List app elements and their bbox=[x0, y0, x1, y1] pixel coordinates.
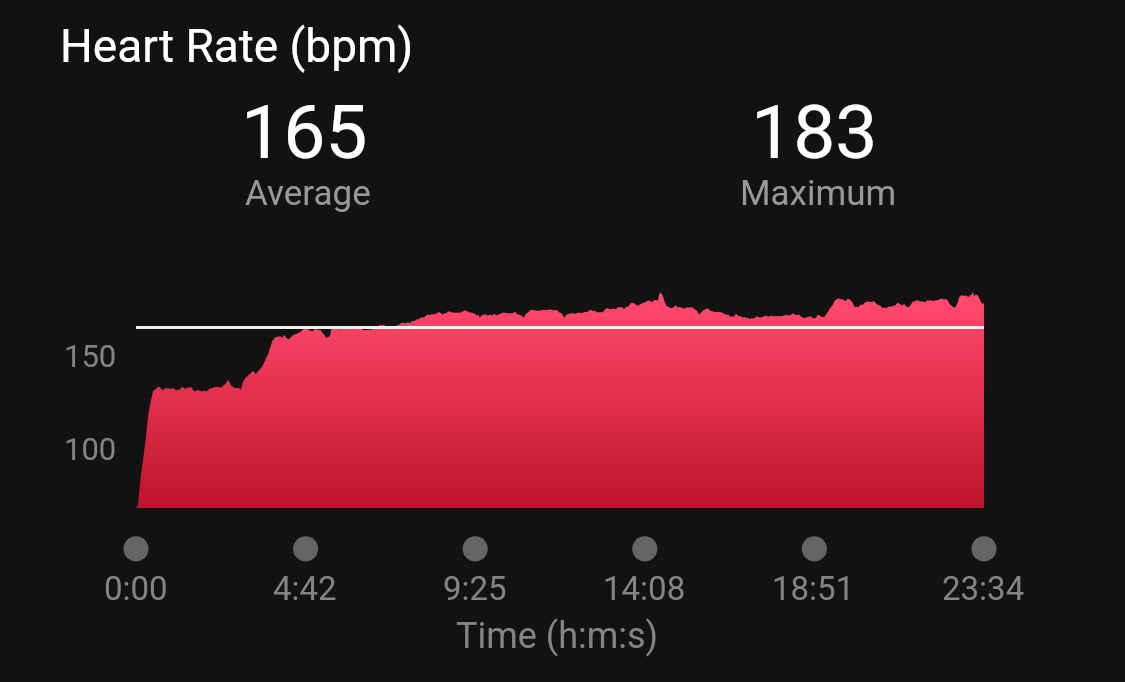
staticText: 165 bbox=[241, 88, 368, 176]
staticText: 9:25 bbox=[443, 569, 507, 608]
button[interactable]: Heart rate chart, average 165 bpm bbox=[40, 250, 1085, 658]
staticText: 14:08 bbox=[603, 569, 686, 608]
button[interactable]: 165 bbox=[170, 78, 445, 216]
button[interactable]: Heart Rate (bpm) bbox=[46, 8, 446, 80]
staticText: 100 bbox=[64, 431, 117, 467]
staticText: 23:34 bbox=[942, 569, 1025, 608]
button[interactable]: 183 bbox=[680, 78, 955, 216]
staticText: 0:00 bbox=[104, 569, 168, 608]
staticText: 150 bbox=[64, 338, 117, 374]
staticText: Average bbox=[245, 173, 371, 214]
staticText: Maximum bbox=[740, 173, 897, 214]
staticText: 4:42 bbox=[273, 569, 337, 608]
staticText: 18:51 bbox=[772, 569, 855, 608]
staticText: Time (h:m:s) bbox=[456, 615, 659, 657]
staticText: 183 bbox=[751, 88, 878, 176]
staticText: Heart Rate (bpm) bbox=[60, 19, 414, 73]
